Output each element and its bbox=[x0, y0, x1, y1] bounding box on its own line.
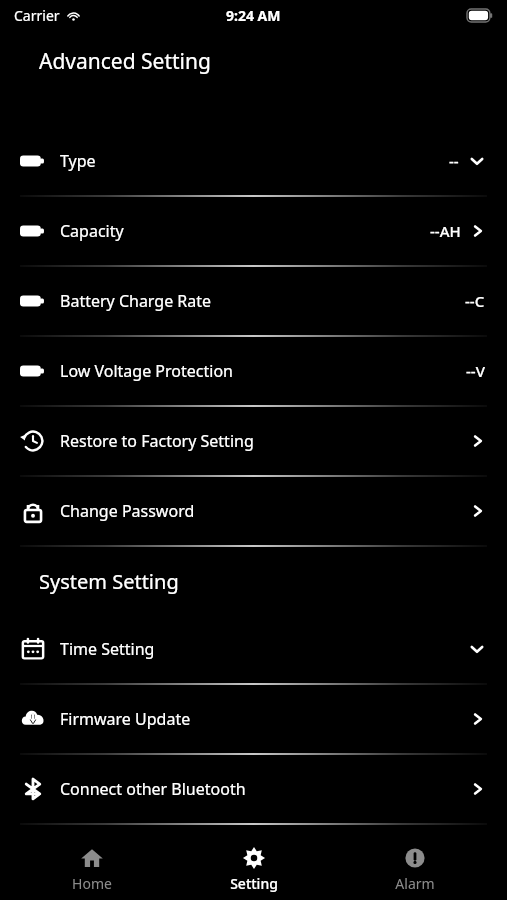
button[interactable]: Change Password bbox=[0, 477, 507, 545]
button[interactable]: Battery Charge Rate bbox=[0, 267, 507, 335]
button[interactable]: Connect other Bluetooth bbox=[0, 755, 507, 823]
button[interactable]: Firmware Update bbox=[0, 685, 507, 753]
staticText: Time Setting bbox=[60, 638, 155, 660]
button[interactable]: About bbox=[0, 825, 507, 893]
staticText: Change Password bbox=[60, 500, 195, 522]
button[interactable]: Type bbox=[0, 127, 507, 195]
staticText: Advanced Setting bbox=[39, 47, 211, 76]
staticText: Restore to Factory Setting bbox=[60, 430, 254, 452]
button[interactable]: Low Voltage Protection bbox=[0, 337, 507, 405]
button[interactable]: Home bbox=[22, 846, 162, 893]
staticText: 9:24 AM bbox=[226, 6, 281, 25]
staticText: Type bbox=[60, 150, 96, 172]
staticText: Battery Charge Rate bbox=[60, 290, 212, 312]
button[interactable]: Alarm bbox=[345, 846, 485, 893]
staticText: Firmware Update bbox=[60, 708, 191, 730]
staticText: Home bbox=[72, 874, 112, 893]
staticText: Capacity bbox=[60, 220, 124, 242]
staticText: Carrier bbox=[14, 6, 60, 25]
button[interactable]: Setting bbox=[184, 846, 324, 893]
button[interactable]: Restore to Factory Setting bbox=[0, 407, 507, 475]
button[interactable]: Time Setting bbox=[0, 615, 507, 683]
staticText: About bbox=[60, 848, 106, 870]
staticText: --V bbox=[466, 361, 485, 381]
staticText: Alarm bbox=[395, 874, 435, 893]
staticText: Low Voltage Protection bbox=[60, 360, 233, 382]
staticText: Connect other Bluetooth bbox=[60, 778, 246, 800]
staticText: --AH bbox=[430, 221, 461, 241]
staticText: --C bbox=[465, 291, 485, 311]
button[interactable]: Capacity bbox=[0, 197, 507, 265]
staticText: System Setting bbox=[39, 568, 179, 595]
staticText: Setting bbox=[230, 874, 278, 893]
staticText: -- bbox=[449, 151, 459, 171]
